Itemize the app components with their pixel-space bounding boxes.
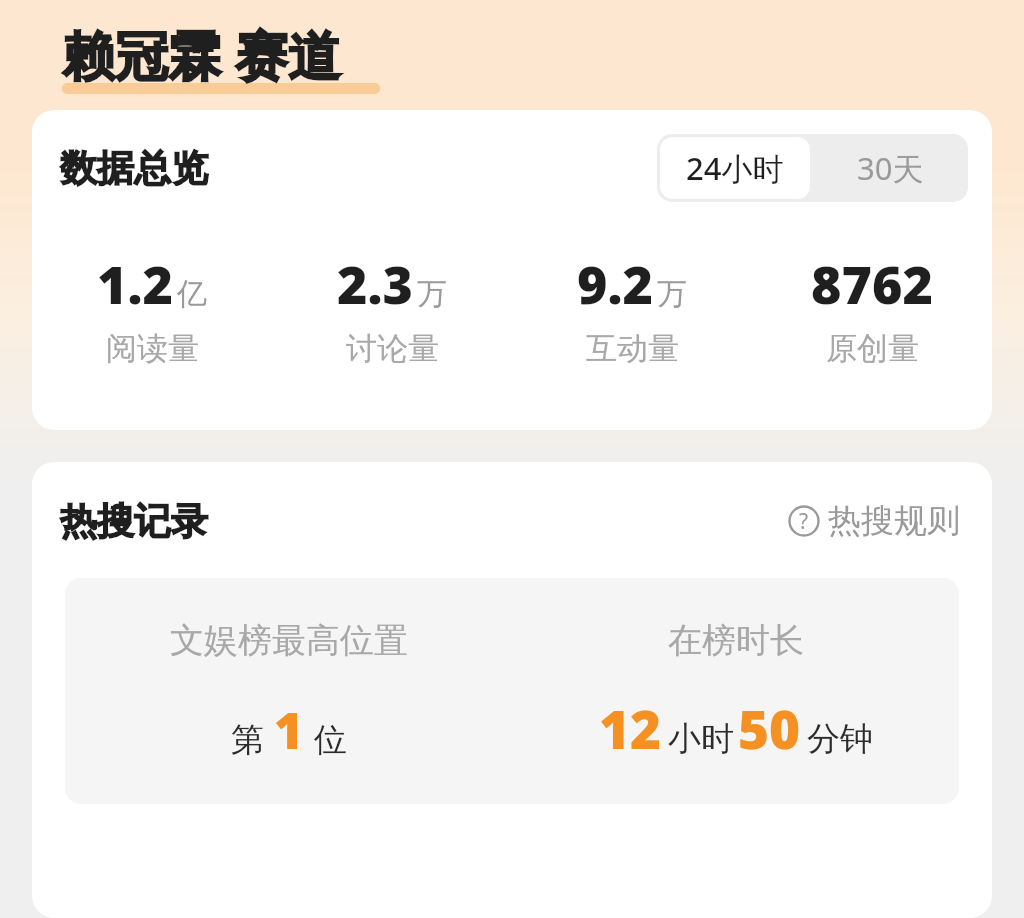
staticText: 12 [599,692,662,764]
button[interactable]: 热搜规则说明 [784,496,964,546]
staticText: 文娱榜最高位置 [170,619,408,662]
staticText: 万 [417,275,447,313]
button[interactable]: 文娱榜最高位置 [65,578,512,804]
staticText: 热搜记录 [60,498,208,545]
staticText: 互动量 [586,329,679,368]
staticText: 赖冠霖 赛道 [62,18,341,90]
staticText: 9.2 [577,248,653,319]
button[interactable]: 2.3 [272,248,512,368]
other: 热搜规则说明 [788,505,820,537]
staticText: 在榜时长 [668,619,804,662]
staticText: 位 [314,719,347,761]
staticText: 热搜规则 [828,500,960,542]
staticText: 万 [657,275,687,313]
staticText: 原创量 [826,329,919,368]
staticText: 数据总览 [60,145,208,192]
staticText: ? [799,507,809,536]
staticText: 第 [231,719,264,761]
staticText: 1 [274,696,304,764]
staticText: 2.3 [337,248,413,319]
staticText: 小时 [668,718,734,760]
staticText: 1.2 [97,248,173,319]
button[interactable]: 1.2 [32,248,272,368]
button[interactable]: 9.2 [512,248,752,368]
staticText: 阅读量 [106,329,199,368]
button[interactable]: 30天 [813,134,968,202]
staticText: 讨论量 [346,329,439,368]
staticText: 分钟 [807,718,873,760]
button[interactable]: 在榜时长 [512,578,959,804]
staticText: 8762 [811,248,933,319]
staticText: 30天 [857,147,924,189]
staticText: 50 [738,692,801,764]
button[interactable]: 8762 [752,248,992,368]
button[interactable]: 24小时 [660,137,810,199]
staticText: 亿 [177,275,207,313]
staticText: 24小时 [686,147,784,189]
